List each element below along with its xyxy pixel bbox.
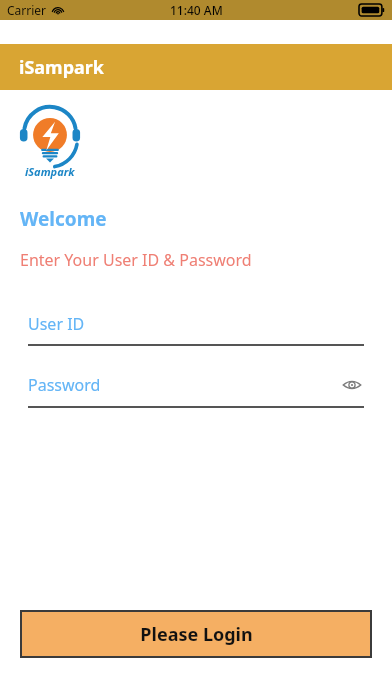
staticText: Welcome xyxy=(20,206,107,232)
staticText: Password xyxy=(28,374,340,396)
staticText: Enter Your User ID & Password xyxy=(20,249,252,271)
staticText: iSampark xyxy=(25,164,75,179)
staticText: Please Login xyxy=(140,622,253,647)
staticText: User ID xyxy=(28,313,364,335)
button[interactable]: User ID xyxy=(28,313,364,346)
button[interactable]: Please Login xyxy=(20,610,372,658)
button[interactable]: Password xyxy=(28,373,364,408)
staticText: Carrier xyxy=(7,2,47,18)
button[interactable]: Show password xyxy=(340,373,364,397)
staticText: iSampark xyxy=(19,55,104,80)
staticText: 11:40 AM xyxy=(170,2,223,18)
